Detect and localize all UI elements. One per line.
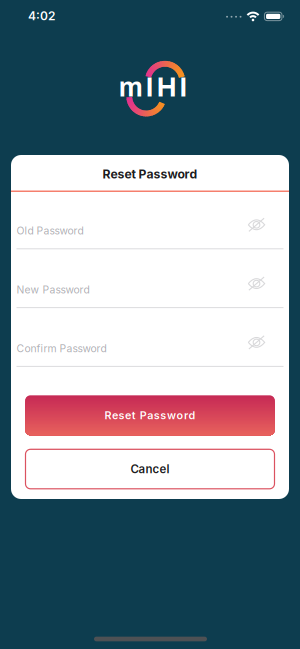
staticText: Cancel <box>130 462 169 476</box>
staticText: mIHI <box>119 73 187 102</box>
button[interactable]: Show Confirm Password <box>247 333 266 352</box>
staticText: New Password <box>16 283 89 296</box>
staticText: Old Password <box>16 224 83 237</box>
staticText: Confirm Password <box>16 342 106 355</box>
button[interactable]: Show New Password <box>247 274 266 293</box>
button[interactable]: Reset Password <box>25 395 274 435</box>
button[interactable]: Cancel <box>25 449 274 489</box>
button[interactable]: Show Old Password <box>247 215 266 234</box>
staticText: Reset Password <box>102 167 197 181</box>
staticText: 4:02 <box>28 9 55 23</box>
staticText: Reset Password <box>104 409 195 422</box>
